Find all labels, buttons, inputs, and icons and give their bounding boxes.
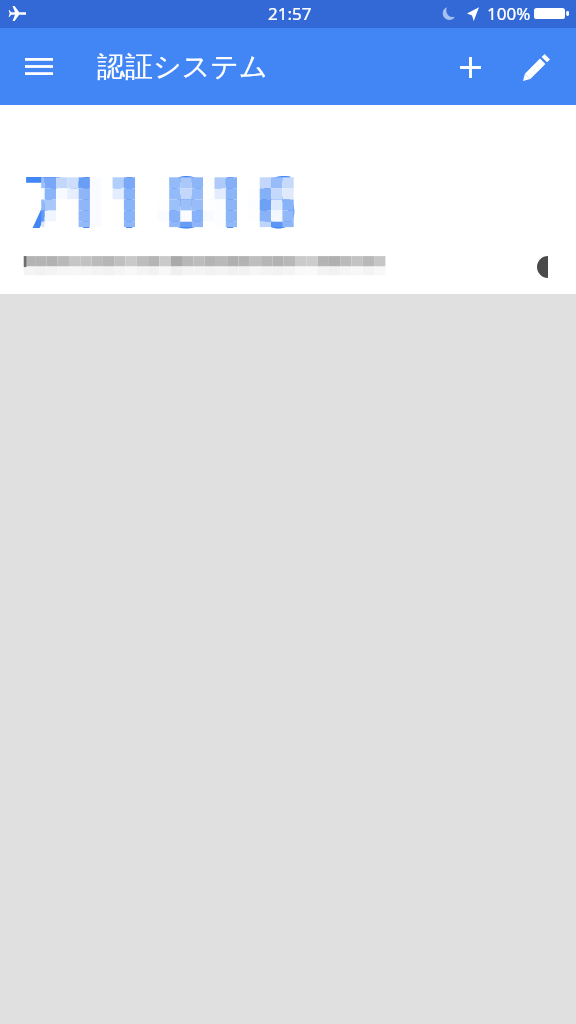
staticText: 6 [257, 152, 298, 249]
staticText: 21:57 [268, 2, 312, 25]
staticText: 1 [64, 152, 105, 249]
button[interactable]: Edit accounts [512, 43, 560, 91]
staticText: 1 [107, 152, 148, 249]
staticText: 100% [487, 2, 531, 25]
staticText: 1 [208, 152, 249, 249]
button[interactable]: Open navigation drawer [16, 44, 61, 89]
button[interactable]: One-time code entry [0, 105, 576, 294]
staticText: 7 [23, 152, 64, 249]
staticText: 認証システム [97, 49, 268, 84]
button[interactable]: Add account [446, 43, 494, 91]
staticText: 8 [166, 152, 207, 249]
